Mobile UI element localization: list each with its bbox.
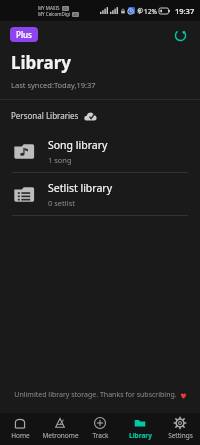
staticText: 1 song [48, 155, 72, 165]
staticText: Personal Libraries [11, 110, 79, 121]
staticText: 19:37 [175, 6, 195, 16]
button[interactable]: Home [0, 413, 40, 445]
staticText: MY MAXIS [38, 5, 60, 11]
button[interactable]: Library [120, 413, 160, 445]
staticText: Song library [48, 138, 108, 152]
staticText: Track [92, 431, 109, 440]
staticText: MY CelcomDigi [38, 11, 70, 17]
staticText: 0 setlist [48, 198, 75, 208]
staticText: Plus [16, 29, 32, 40]
staticText: 4G [73, 12, 78, 17]
staticText: Metronome [42, 431, 79, 440]
staticText: 4G [63, 6, 68, 11]
staticText: 12% [144, 7, 157, 16]
staticText: Library [129, 431, 152, 440]
button[interactable]: Setlist library [0, 173, 200, 215]
button[interactable]: Plus [10, 27, 38, 42]
staticText: Setlist library [48, 181, 113, 195]
button[interactable]: Song library [0, 130, 200, 172]
staticText: Library [11, 51, 72, 74]
staticText: Last synced:Today,19:37 [11, 80, 96, 90]
staticText: Settings [168, 431, 193, 440]
button[interactable]: Sync [168, 23, 192, 47]
staticText: Unlimited library storage. Thanks for su… [14, 390, 177, 400]
button[interactable]: Metronome [40, 413, 80, 445]
button[interactable]: Track [80, 413, 120, 445]
staticText: Home [11, 431, 30, 440]
button[interactable]: Settings [160, 413, 200, 445]
